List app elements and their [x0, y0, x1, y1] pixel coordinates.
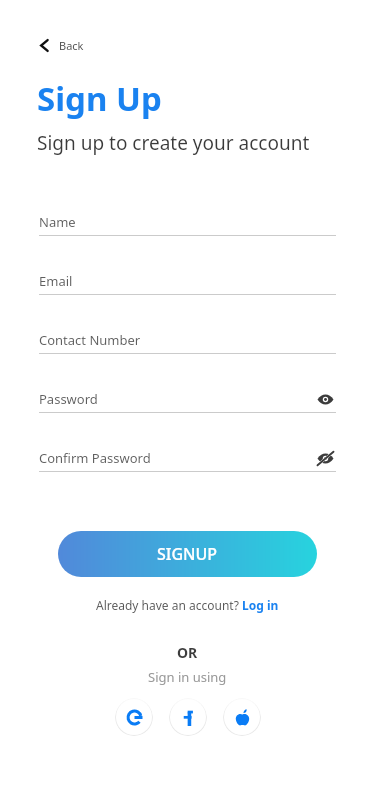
button[interactable]: SIGNUP: [58, 531, 317, 577]
button[interactable]: Sign in with Apple: [223, 698, 261, 736]
staticText: Sign Up: [37, 76, 162, 121]
button[interactable]: Hide password: [314, 447, 336, 469]
button[interactable]: Sign in with Google: [115, 698, 153, 736]
staticText: Confirm Password: [39, 449, 314, 467]
button[interactable]: Sign in with Facebook: [169, 698, 207, 736]
staticText: Password: [39, 390, 314, 408]
staticText: Sign up to create your account: [37, 130, 310, 156]
button[interactable]: Name: [0, 208, 375, 267]
button[interactable]: Show password: [314, 388, 336, 410]
staticText: Name: [39, 213, 336, 231]
button[interactable]: Already have an account? Log in: [90, 593, 285, 617]
staticText: Back: [59, 38, 84, 53]
staticText: Email: [39, 272, 336, 290]
staticText: SIGNUP: [157, 543, 218, 565]
button[interactable]: Back: [30, 32, 92, 59]
staticText: Sign in using: [148, 668, 227, 686]
button[interactable]: Password: [0, 385, 375, 444]
staticText: Already have an account? Log in: [96, 597, 279, 613]
staticText: OR: [177, 643, 198, 662]
button[interactable]: Confirm Password: [0, 444, 375, 503]
button[interactable]: Email: [0, 267, 375, 326]
button[interactable]: Contact Number: [0, 326, 375, 385]
staticText: Contact Number: [39, 331, 336, 349]
